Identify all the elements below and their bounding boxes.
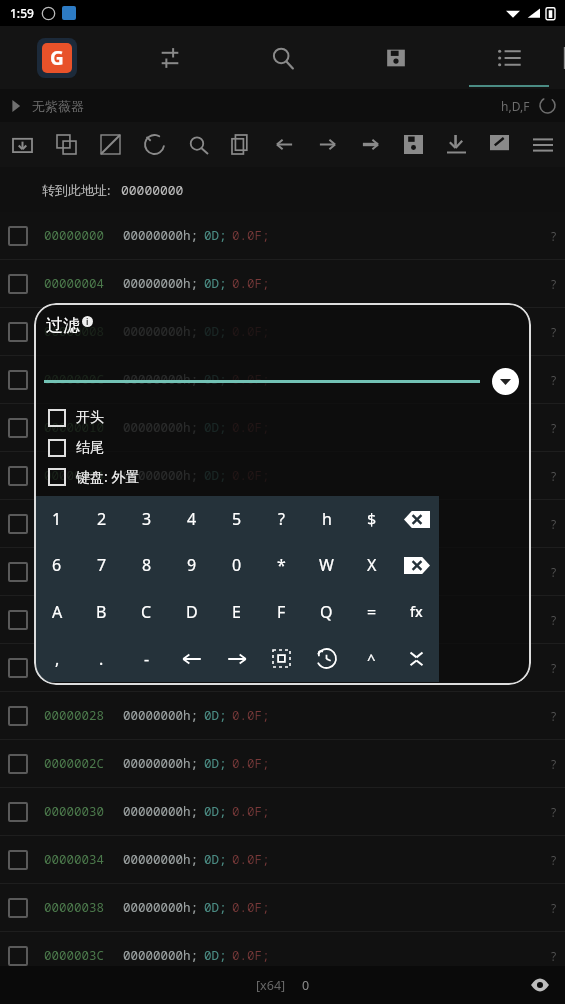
staticText: E (232, 601, 241, 623)
button[interactable]: 00000010 (0, 404, 565, 451)
staticText: 00000024 (44, 659, 105, 676)
button[interactable]: hist (304, 635, 349, 682)
button[interactable]: Filter settings (113, 26, 226, 89)
button[interactable]: Back (263, 122, 306, 167)
button[interactable]: 00000030 (0, 788, 565, 835)
button[interactable]: 6 (35, 542, 79, 588)
staticText: 0D; (204, 275, 227, 292)
staticText: - (144, 648, 150, 670)
staticText: X (367, 554, 377, 576)
button[interactable]: 0000000C (0, 356, 565, 403)
button[interactable]: ? (259, 496, 304, 542)
button[interactable]: 00000040 (0, 980, 565, 1004)
button[interactable]: 00000000 (0, 212, 565, 259)
staticText: 0D; (204, 419, 227, 436)
button[interactable]: 00000028 (0, 692, 565, 739)
button[interactable]: 2 (79, 496, 124, 542)
staticText: 无紫薇器 (32, 98, 84, 114)
button[interactable]: fx (394, 588, 439, 635)
button[interactable]: - (124, 635, 169, 682)
staticText: ? (551, 228, 557, 244)
button[interactable]: D (169, 588, 214, 635)
button[interactable]: 0000001C (0, 548, 565, 595)
button[interactable]: bs1 (394, 496, 439, 542)
button[interactable]: E (214, 588, 259, 635)
button[interactable]: 00000008 (0, 308, 565, 355)
button[interactable]: vv (394, 635, 439, 682)
button[interactable]: * (259, 542, 304, 588)
button[interactable]: 00000020 (0, 596, 565, 643)
button[interactable]: . (79, 635, 124, 682)
button[interactable]: App icon (0, 26, 113, 89)
button[interactable]: Edit (478, 122, 521, 167)
staticText: 0D; (204, 371, 227, 388)
button[interactable]: 键盘: 外置 (48, 467, 140, 486)
button[interactable]: sel (259, 635, 304, 682)
button[interactable]: Deselect (88, 122, 132, 167)
button[interactable]: $ (349, 496, 394, 542)
staticText: ? (551, 564, 557, 580)
staticText: i (86, 316, 89, 327)
button[interactable]: = (349, 588, 394, 635)
staticText: 0.0F; (232, 851, 270, 868)
staticText: 键盘: 外置 (76, 467, 140, 486)
staticText: ? (551, 660, 557, 676)
button[interactable]: List (452, 26, 565, 89)
button[interactable]: Search again (176, 122, 220, 167)
button[interactable]: , (35, 635, 79, 682)
button[interactable]: 3 (124, 496, 169, 542)
button[interactable]: X (349, 542, 394, 588)
button[interactable]: Forward (306, 122, 349, 167)
button[interactable]: h (304, 496, 349, 542)
button[interactable]: Menu (521, 122, 565, 167)
button[interactable]: Copy (220, 122, 263, 167)
button[interactable]: Undo (132, 122, 176, 167)
button[interactable]: 00000018 (0, 500, 565, 547)
button[interactable]: 00000038 (0, 884, 565, 931)
button[interactable]: Next (349, 122, 392, 167)
button[interactable]: Save (339, 26, 452, 89)
button[interactable]: 9 (169, 542, 214, 588)
button[interactable]: left (169, 635, 214, 682)
staticText: 6 (52, 554, 62, 576)
button[interactable]: 7 (79, 542, 124, 588)
button[interactable]: Import (0, 122, 44, 167)
button[interactable]: F (259, 588, 304, 635)
button[interactable]: B (79, 588, 124, 635)
staticText: 00000018 (44, 515, 105, 532)
button[interactable]: Toggle visibility (527, 972, 553, 998)
button[interactable]: 5 (214, 496, 259, 542)
button[interactable]: Save (392, 122, 435, 167)
button[interactable]: right (214, 635, 259, 682)
button[interactable]: 8 (124, 542, 169, 588)
button[interactable]: Search (226, 26, 339, 89)
staticText: ? (551, 756, 557, 772)
staticText: 00000004 (44, 275, 105, 292)
button[interactable]: 00000024 (0, 644, 565, 691)
button[interactable]: Info (82, 316, 93, 327)
button[interactable]: Copy region (44, 122, 88, 167)
button[interactable]: 1 (35, 496, 79, 542)
button[interactable]: 00000014 (0, 452, 565, 499)
button[interactable]: Q (304, 588, 349, 635)
button[interactable]: 00000034 (0, 836, 565, 883)
button[interactable]: 0000002C (0, 740, 565, 787)
button[interactable]: 4 (169, 496, 214, 542)
staticText: 5 (232, 508, 242, 530)
staticText: 0D; (204, 899, 227, 916)
button[interactable]: ^ (349, 635, 394, 682)
button[interactable]: 结尾 (48, 439, 104, 457)
staticText: 0000003C (44, 947, 105, 964)
staticText: 0 (232, 554, 242, 576)
button[interactable]: 0 (214, 542, 259, 588)
button[interactable]: Download (435, 122, 478, 167)
button[interactable]: 0000003C (0, 932, 565, 979)
button[interactable]: W (304, 542, 349, 588)
button[interactable]: C (124, 588, 169, 635)
button[interactable]: Expand (492, 368, 519, 395)
button[interactable]: 开头 (48, 409, 104, 427)
button[interactable]: 00000004 (0, 260, 565, 307)
button[interactable]: A (35, 588, 79, 635)
button[interactable]: bs2 (394, 542, 439, 588)
